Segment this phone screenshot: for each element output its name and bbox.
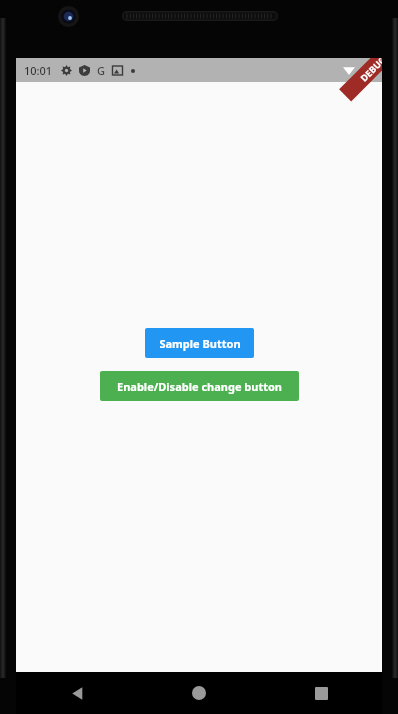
button[interactable]: Enable/Disable change button — [100, 371, 299, 401]
button[interactable]: Home — [138, 672, 260, 714]
staticText: Sample Button — [159, 336, 241, 351]
staticText: Enable/Disable change button — [117, 379, 282, 394]
button[interactable]: Sample Button — [145, 328, 254, 358]
staticText: DEBUG — [357, 58, 382, 84]
staticText: G — [97, 63, 105, 78]
button[interactable]: Back — [16, 672, 138, 714]
button[interactable]: Recent apps — [260, 672, 382, 714]
staticText: 10:01 — [24, 63, 53, 78]
